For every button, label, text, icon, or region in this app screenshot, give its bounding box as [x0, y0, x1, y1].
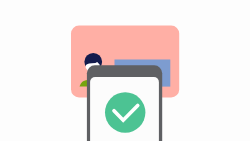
button[interactable]: Setup complete illustration — [0, 0, 250, 141]
